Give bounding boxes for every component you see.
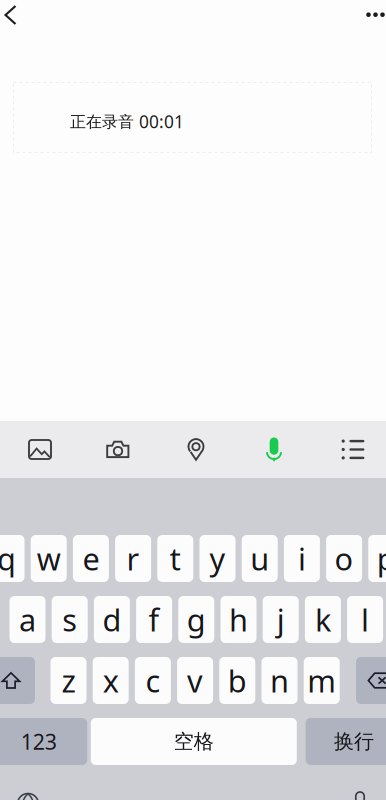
- staticText: d: [102, 599, 121, 640]
- staticText: u: [250, 538, 269, 579]
- button[interactable]: Shift: [0, 657, 35, 704]
- staticText: f: [149, 599, 160, 640]
- staticText: b: [228, 660, 247, 701]
- button[interactable]: h: [220, 596, 256, 643]
- staticText: 空格: [174, 729, 214, 754]
- button[interactable]: x: [93, 657, 129, 704]
- button[interactable]: o: [326, 535, 362, 582]
- button[interactable]: 换行: [306, 718, 386, 765]
- button[interactable]: d: [94, 596, 130, 643]
- button[interactable]: s: [52, 596, 88, 643]
- staticText: q: [0, 538, 16, 579]
- staticText: c: [145, 660, 160, 701]
- staticText: i: [298, 538, 306, 579]
- button[interactable]: v: [177, 657, 213, 704]
- button[interactable]: Delete: [356, 657, 386, 704]
- staticText: z: [61, 660, 75, 701]
- button[interactable]: n: [261, 657, 297, 704]
- button[interactable]: q: [0, 535, 24, 582]
- button[interactable]: Switch keyboard: [11, 792, 45, 800]
- staticText: k: [315, 599, 331, 640]
- button[interactable]: More: [355, 0, 386, 30]
- staticText: t: [170, 538, 181, 579]
- button[interactable]: p: [368, 535, 386, 582]
- button[interactable]: r: [115, 535, 151, 582]
- staticText: a: [19, 599, 36, 640]
- button[interactable]: j: [263, 596, 299, 643]
- staticText: e: [82, 538, 99, 579]
- button[interactable]: e: [73, 535, 109, 582]
- button[interactable]: w: [31, 535, 67, 582]
- button[interactable]: g: [178, 596, 214, 643]
- staticText: r: [127, 538, 140, 579]
- staticText: w: [37, 538, 61, 579]
- staticText: p: [377, 538, 386, 579]
- staticText: n: [270, 660, 289, 701]
- button[interactable]: c: [135, 657, 171, 704]
- button[interactable]: a: [9, 596, 45, 643]
- staticText: m: [307, 660, 336, 701]
- staticText: j: [277, 599, 285, 640]
- button[interactable]: Dictation: [343, 790, 377, 800]
- button[interactable]: b: [219, 657, 255, 704]
- button[interactable]: l: [347, 596, 383, 643]
- button[interactable]: 空格: [91, 718, 297, 765]
- staticText: o: [335, 538, 354, 579]
- button[interactable]: m: [304, 657, 340, 704]
- button[interactable]: 123: [0, 718, 87, 765]
- button[interactable]: f: [136, 596, 172, 643]
- button[interactable]: Voice: [247, 421, 301, 478]
- button[interactable]: Checklist: [326, 421, 380, 478]
- staticText: l: [361, 599, 369, 640]
- button[interactable]: y: [199, 535, 235, 582]
- button[interactable]: k: [305, 596, 341, 643]
- staticText: 换行: [334, 729, 374, 754]
- staticText: g: [187, 599, 206, 640]
- button[interactable]: Camera: [91, 421, 145, 478]
- button[interactable]: Back: [0, 0, 28, 35]
- button[interactable]: Photos: [13, 421, 67, 478]
- button[interactable]: t: [157, 535, 193, 582]
- button[interactable]: z: [50, 657, 86, 704]
- staticText: s: [62, 599, 77, 640]
- staticText: y: [209, 538, 225, 579]
- staticText: h: [229, 599, 248, 640]
- staticText: 正在录音: [70, 112, 134, 132]
- staticText: x: [103, 660, 119, 701]
- staticText: 00:01: [139, 110, 184, 133]
- staticText: 123: [21, 727, 57, 756]
- button[interactable]: Location: [169, 421, 223, 478]
- staticText: v: [187, 660, 203, 701]
- button[interactable]: u: [242, 535, 278, 582]
- button[interactable]: i: [284, 535, 320, 582]
